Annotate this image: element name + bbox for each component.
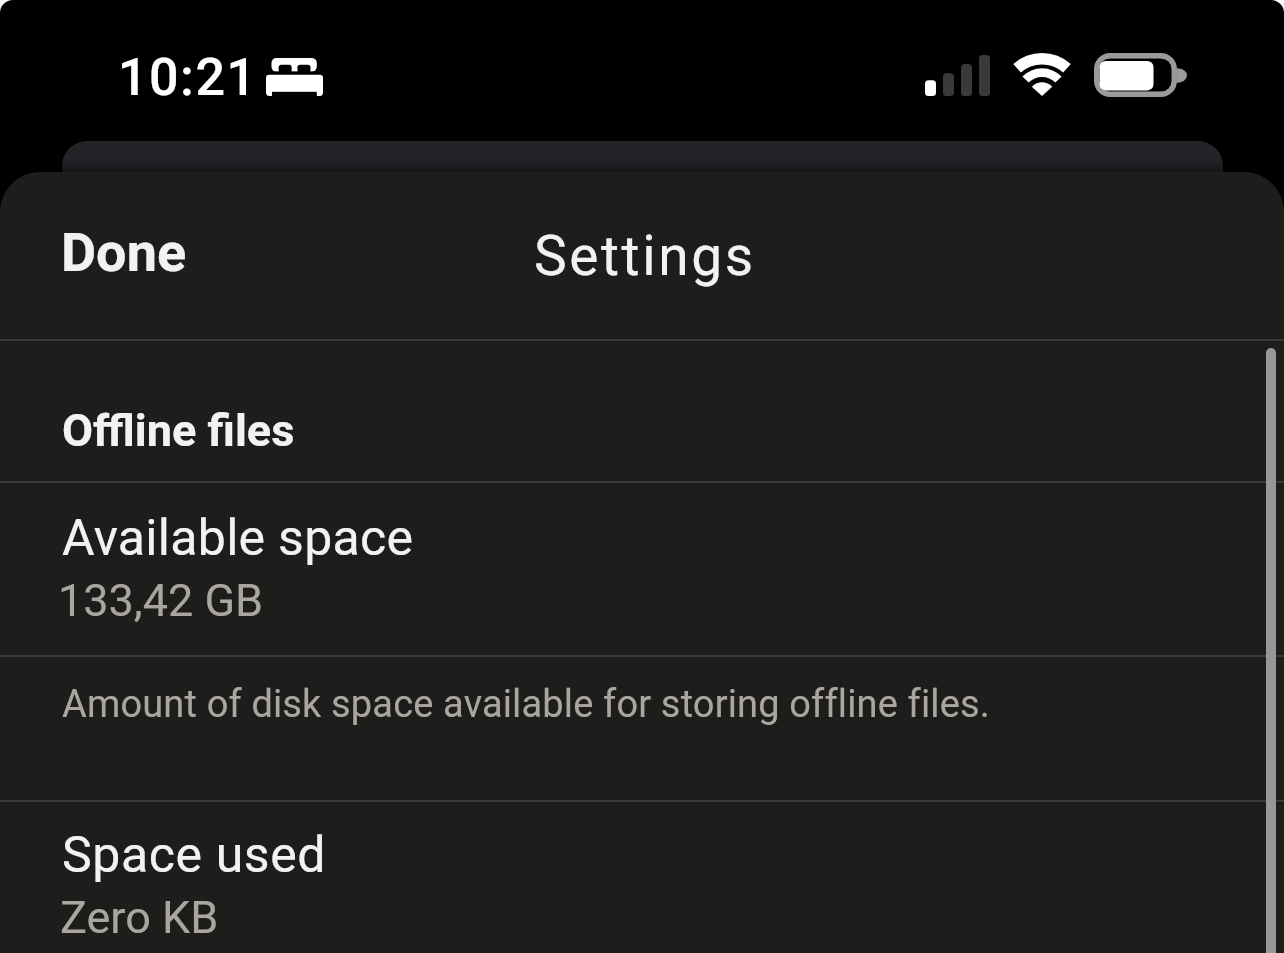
button[interactable]: Available space [0, 483, 1284, 655]
staticText: 133,42 GB [58, 574, 264, 627]
other: Wi-Fi connected [1013, 53, 1071, 96]
staticText: Amount of disk space available for stori… [62, 682, 990, 727]
other: Battery [1094, 53, 1187, 97]
staticText: Zero KB [60, 891, 219, 944]
staticText: 10:21 [118, 47, 258, 108]
other: Cellular signal strength [925, 55, 990, 96]
button[interactable]: Space used [0, 802, 1284, 953]
staticText: Available space [62, 509, 414, 568]
other: Sleep focus on [266, 58, 323, 96]
button[interactable]: Done [38, 207, 210, 297]
staticText: Offline files [62, 404, 295, 457]
staticText: Done [61, 221, 187, 284]
staticText: Settings [534, 224, 756, 288]
staticText: Space used [62, 826, 327, 885]
